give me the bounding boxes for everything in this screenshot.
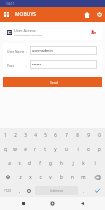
button[interactable]: j [67, 156, 78, 170]
staticText: c [39, 174, 42, 180]
staticText: t [44, 146, 46, 152]
button[interactable]: i [72, 142, 83, 156]
staticText: w [13, 146, 17, 152]
button[interactable]: Add user [90, 29, 97, 36]
button[interactable]: 1 [0, 128, 10, 142]
button[interactable]: •••••• [32, 60, 95, 69]
button[interactable]: 0 [94, 128, 105, 142]
button[interactable]: 8 [72, 128, 83, 142]
staticText: f [39, 160, 41, 166]
staticText: b [60, 174, 63, 180]
staticText: p [98, 146, 101, 152]
button[interactable]: Backspace [89, 170, 105, 184]
staticText: 5 [44, 132, 47, 138]
button[interactable]: Shift [0, 170, 15, 184]
button[interactable]: Home [81, 7, 93, 22]
staticText: •••••• [32, 62, 42, 67]
button[interactable]: z [15, 170, 25, 184]
staticText: usernadmin [32, 48, 53, 53]
staticText: d [28, 160, 31, 166]
button[interactable]: 6 [50, 128, 61, 142]
button[interactable]: l [89, 156, 100, 170]
staticText: User Access [14, 28, 36, 33]
button[interactable]: usernadmin [32, 46, 95, 55]
staticText: o [87, 146, 90, 152]
button[interactable]: , [15, 184, 24, 197]
staticText: 3 [24, 132, 27, 138]
button[interactable]: Logout [93, 7, 105, 22]
staticText: 4 [34, 132, 37, 138]
button[interactable]: Menu [0, 7, 12, 22]
button[interactable]: Recents [17, 197, 30, 210]
button[interactable]: o [83, 142, 94, 156]
button[interactable]: Enter [89, 184, 105, 197]
staticText: l [94, 160, 96, 166]
button[interactable]: n [67, 170, 78, 184]
button[interactable]: v [45, 170, 56, 184]
staticText: User Name [7, 49, 25, 53]
staticText: a [8, 160, 11, 166]
staticText: 8 [76, 132, 79, 138]
staticText: MOBUYS [15, 11, 37, 18]
button[interactable]: Home [46, 197, 59, 210]
button[interactable]: g [45, 156, 56, 170]
button[interactable]: x [25, 170, 35, 184]
staticText: 1 [4, 132, 7, 138]
button[interactable]: a [4, 156, 14, 170]
staticText: s [18, 160, 21, 166]
button[interactable]: d [24, 156, 34, 170]
staticText: e [24, 146, 27, 152]
button[interactable]: r [30, 142, 40, 156]
button[interactable]: 2 [10, 128, 20, 142]
button[interactable]: m [78, 170, 89, 184]
button[interactable]: h [56, 156, 67, 170]
staticText: v [49, 174, 52, 180]
staticText: 7 [65, 132, 68, 138]
button[interactable]: b [56, 170, 67, 184]
button[interactable]: 7 [61, 128, 72, 142]
button[interactable]: 4 [30, 128, 40, 142]
staticText: u [65, 146, 68, 152]
button[interactable]: 9 [83, 128, 94, 142]
staticText: Pass [7, 63, 15, 67]
staticText: 14:11 [6, 1, 15, 6]
button[interactable]: u [61, 142, 72, 156]
button[interactable]: t [40, 142, 50, 156]
button[interactable]: f [34, 156, 45, 170]
button[interactable]: Indonesia [35, 186, 78, 195]
button[interactable]: Back [76, 197, 89, 210]
button[interactable]: 5 [40, 128, 50, 142]
staticText: x [29, 174, 32, 180]
button[interactable]: y [50, 142, 61, 156]
button[interactable]: Send [3, 77, 102, 87]
staticText: q [4, 146, 7, 152]
button[interactable]: c [35, 170, 45, 184]
button[interactable]: q [0, 142, 10, 156]
staticText: m [81, 174, 86, 180]
button[interactable]: e [20, 142, 30, 156]
staticText: r [34, 146, 36, 152]
button[interactable]: k [78, 156, 89, 170]
staticText: n [71, 174, 74, 180]
button[interactable]: ?123 [0, 184, 15, 197]
button[interactable]: w [10, 142, 20, 156]
staticText: 9 [87, 132, 90, 138]
button[interactable]: p [94, 142, 105, 156]
staticText: : [26, 63, 27, 67]
button[interactable]: Emoji [24, 184, 34, 197]
staticText: z [19, 174, 22, 180]
staticText: Send [50, 80, 58, 85]
staticText: : [26, 49, 27, 53]
staticText: , [19, 188, 21, 194]
staticText: y [54, 146, 57, 152]
staticText: ?123 [4, 189, 11, 193]
staticText: g [49, 160, 52, 166]
button[interactable]: s [14, 156, 24, 170]
staticText: Indonesia [50, 189, 64, 193]
staticText: 2 [14, 132, 17, 138]
button[interactable]: 3 [20, 128, 30, 142]
staticText: 6 [54, 132, 57, 138]
staticText: k [82, 160, 85, 166]
button[interactable]: . [79, 184, 89, 197]
staticText: . [83, 188, 85, 194]
